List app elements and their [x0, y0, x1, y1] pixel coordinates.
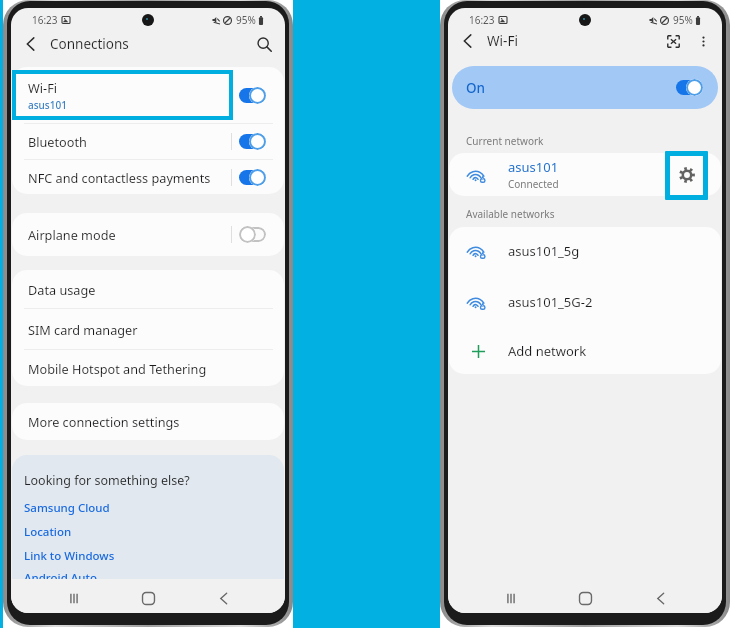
- staticText: asus101_5g: [508, 242, 580, 260]
- button[interactable]: Home: [573, 586, 597, 610]
- staticText: SIM card manager: [28, 321, 138, 338]
- button[interactable]: Location: [24, 524, 72, 540]
- staticText: Looking for something else?: [24, 472, 190, 489]
- staticText: Add network: [508, 342, 587, 360]
- button[interactable]: Wi-Fi: [12, 67, 284, 123]
- staticText: Wi-Fi: [28, 79, 58, 96]
- button[interactable]: More connection settings: [12, 403, 284, 440]
- staticText: On: [466, 79, 486, 97]
- staticText: 95%: [236, 13, 256, 27]
- button[interactable]: SIM card manager: [12, 309, 284, 349]
- button[interactable]: Samsung Cloud: [24, 500, 110, 516]
- staticText: Connected: [508, 177, 559, 191]
- staticText: 16:23: [469, 13, 495, 27]
- staticText: NFC and contactless payments: [28, 169, 211, 186]
- button[interactable]: Add network: [449, 328, 721, 374]
- button[interactable]: Back: [211, 586, 235, 610]
- button[interactable]: asus101_5G-2: [449, 275, 721, 328]
- button[interactable]: asus101: [449, 153, 721, 196]
- staticText: Wi-Fi: [487, 32, 518, 50]
- button[interactable]: On: [452, 66, 718, 109]
- button[interactable]: Network settings: [675, 163, 699, 187]
- button[interactable]: More options: [690, 28, 716, 54]
- button[interactable]: Data usage: [12, 270, 284, 308]
- staticText: Data usage: [28, 281, 96, 298]
- button[interactable]: Recent apps: [62, 586, 86, 610]
- button[interactable]: Home: [136, 586, 160, 610]
- button[interactable]: Link to Windows: [24, 548, 115, 564]
- button[interactable]: Airplane mode: [12, 213, 284, 256]
- button[interactable]: Turn off: [676, 79, 703, 96]
- staticText: Airplane mode: [28, 226, 116, 243]
- staticText: Bluetooth: [28, 133, 87, 150]
- button[interactable]: Navigate up: [455, 28, 481, 54]
- staticText: 16:23: [32, 13, 58, 27]
- button[interactable]: Turn off: [239, 133, 266, 150]
- staticText: asus101: [508, 158, 559, 176]
- button[interactable]: Bluetooth: [12, 124, 284, 159]
- staticText: More connection settings: [28, 413, 180, 430]
- staticText: asus101_5G-2: [508, 293, 593, 311]
- staticText: Available networks: [466, 207, 555, 221]
- button[interactable]: Turn off: [239, 169, 266, 186]
- staticText: asus101: [28, 98, 67, 112]
- button[interactable]: Scan QR code: [660, 28, 686, 54]
- button[interactable]: Recent apps: [499, 586, 523, 610]
- staticText: 95%: [673, 13, 693, 27]
- staticText: Mobile Hotspot and Tethering: [28, 360, 207, 377]
- button[interactable]: Search: [251, 31, 277, 57]
- button[interactable]: Back: [648, 586, 672, 610]
- button[interactable]: Turn off: [239, 87, 266, 104]
- button[interactable]: Navigate up: [18, 31, 44, 57]
- button[interactable]: Mobile Hotspot and Tethering: [12, 350, 284, 386]
- button[interactable]: Android Auto: [24, 570, 97, 579]
- staticText: Connections: [50, 35, 129, 53]
- button[interactable]: NFC and contactless payments: [12, 160, 284, 194]
- button[interactable]: asus101_5g: [449, 227, 721, 275]
- button[interactable]: Turn on: [239, 226, 266, 243]
- staticText: Current network: [466, 134, 544, 148]
